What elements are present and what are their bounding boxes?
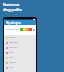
button[interactable]: Tree nut xyxy=(4,45,36,50)
button[interactable]: Milk xyxy=(4,50,36,55)
staticText: Shellfish xyxy=(9,41,18,44)
button[interactable]: Soy xyxy=(4,65,36,70)
staticText: Numerous xyxy=(3,3,20,7)
button[interactable]: Shellfish xyxy=(4,40,36,45)
staticText: Tree nut xyxy=(9,46,18,49)
staticText: Soy xyxy=(9,66,13,69)
staticText: Peanut xyxy=(9,36,17,39)
button[interactable]: Wheat xyxy=(4,60,36,65)
button[interactable]: My allergies xyxy=(4,20,36,25)
staticText: allergy profiles xyxy=(3,8,22,11)
staticText: My allergies xyxy=(6,21,21,25)
staticText: Milk xyxy=(9,51,14,54)
button[interactable]: Peanut xyxy=(4,35,36,40)
button[interactable]: Egg xyxy=(4,55,36,60)
staticText: Wheat xyxy=(9,61,16,64)
staticText: Egg xyxy=(9,56,13,59)
staticText: Severity level xyxy=(6,28,20,31)
